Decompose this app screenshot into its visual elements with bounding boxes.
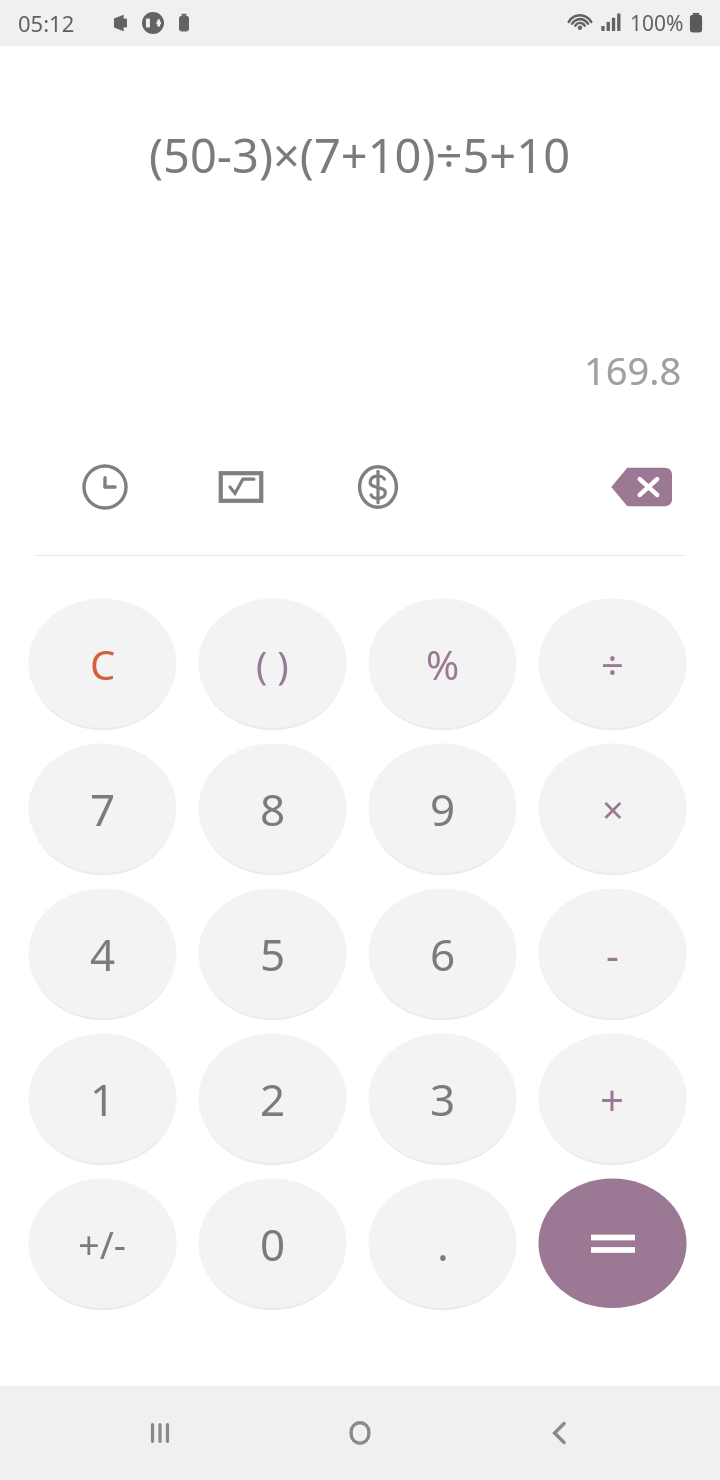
button[interactable]: ( ) xyxy=(192,592,353,736)
button[interactable]: C xyxy=(22,592,183,736)
button[interactable]: 3 xyxy=(362,1027,523,1171)
staticText: 9 xyxy=(430,779,456,839)
button[interactable]: 4 xyxy=(22,882,183,1026)
button[interactable]: 8 xyxy=(192,737,353,881)
button[interactable]: 0 xyxy=(192,1172,353,1316)
button[interactable]: % xyxy=(362,592,523,736)
button[interactable]: Currency converter xyxy=(344,455,412,519)
button[interactable] xyxy=(532,1172,693,1316)
staticText: 5 xyxy=(260,924,286,984)
button[interactable]: Back xyxy=(510,1386,610,1480)
staticText: 05:12 xyxy=(18,8,75,38)
staticText: + xyxy=(600,1071,625,1128)
staticText: (50-3)×(7+10)÷5+10 xyxy=(149,123,571,187)
staticText: ( ) xyxy=(256,638,289,690)
staticText: C xyxy=(90,637,116,691)
staticText: 7 xyxy=(90,779,116,839)
button[interactable]: 6 xyxy=(362,882,523,1026)
button[interactable]: 1 xyxy=(22,1027,183,1171)
staticText: 6 xyxy=(430,924,456,984)
button[interactable]: Home xyxy=(310,1386,410,1480)
button[interactable]: History xyxy=(71,455,139,519)
button[interactable]: 2 xyxy=(192,1027,353,1171)
staticText: +/- xyxy=(78,1218,127,1270)
staticText: 4 xyxy=(90,924,116,984)
staticText: 1 xyxy=(90,1069,116,1129)
button[interactable]: - xyxy=(532,882,693,1026)
button[interactable]: 7 xyxy=(22,737,183,881)
staticText: 100% xyxy=(630,9,684,38)
staticText: ÷ xyxy=(601,637,624,691)
button[interactable]: + xyxy=(532,1027,693,1171)
button[interactable]: × xyxy=(532,737,693,881)
staticText: 0 xyxy=(260,1214,286,1274)
staticText: - xyxy=(606,927,619,981)
staticText: 2 xyxy=(260,1069,286,1129)
button[interactable]: ÷ xyxy=(532,592,693,736)
staticText: 3 xyxy=(430,1069,456,1129)
button[interactable]: . xyxy=(362,1172,523,1316)
staticText: 169.8 xyxy=(584,344,682,396)
staticText: × xyxy=(602,783,624,835)
button[interactable]: Backspace xyxy=(596,457,686,517)
staticText: 8 xyxy=(260,779,286,839)
button[interactable]: Scientific xyxy=(207,455,275,519)
button[interactable]: 5 xyxy=(192,882,353,1026)
button[interactable]: 9 xyxy=(362,737,523,881)
button[interactable]: +/- xyxy=(22,1172,183,1316)
staticText: . xyxy=(437,1214,449,1274)
button[interactable]: Recent apps xyxy=(110,1386,210,1480)
staticText: % xyxy=(426,637,460,691)
